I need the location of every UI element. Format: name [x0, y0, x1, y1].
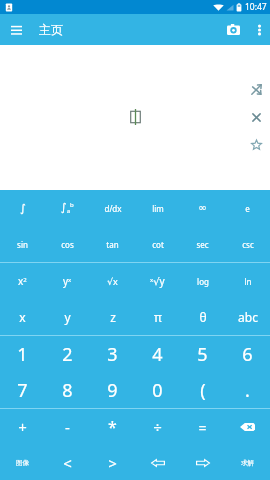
staticText: lim: [152, 203, 164, 214]
button[interactable]: 4: [135, 336, 180, 372]
button[interactable]: *: [90, 409, 135, 445]
button[interactable]: abc: [225, 299, 270, 335]
button[interactable]: 8: [45, 372, 90, 408]
staticText: 0: [152, 378, 163, 403]
staticText: x2: [18, 274, 27, 288]
staticText: sin: [17, 239, 28, 250]
button[interactable]: <: [45, 445, 90, 480]
staticText: x: [19, 309, 26, 325]
staticText: π: [154, 309, 162, 325]
button[interactable]: csc: [225, 226, 270, 262]
staticText: tan: [106, 239, 119, 250]
button[interactable]: (: [180, 372, 225, 408]
staticText: *: [108, 416, 117, 438]
staticText: 1: [17, 342, 28, 367]
button[interactable]: 6: [225, 336, 270, 372]
button[interactable]: lim: [135, 190, 180, 226]
button[interactable]: tan: [90, 226, 135, 262]
button[interactable]: cot: [135, 226, 180, 262]
button[interactable]: d/dx: [90, 190, 135, 226]
button[interactable]: e: [225, 190, 270, 226]
staticText: cot: [152, 239, 164, 250]
button[interactable]: 1: [0, 336, 45, 372]
staticText: 5: [197, 342, 208, 367]
button[interactable]: ÷: [135, 409, 180, 445]
button[interactable]: x2: [0, 263, 45, 299]
button[interactable]: Favorite: [247, 135, 265, 153]
button[interactable]: .: [225, 372, 270, 408]
staticText: <: [63, 453, 72, 473]
staticText: 6: [242, 342, 253, 367]
button[interactable]: Move left: [135, 445, 180, 480]
staticText: x√y: [150, 274, 165, 288]
button[interactable]: y: [45, 299, 90, 335]
button[interactable]: x√y: [135, 263, 180, 299]
staticText: 10:47: [245, 1, 267, 13]
staticText: d/dx: [104, 203, 122, 214]
button[interactable]: ∫ab: [45, 190, 90, 226]
staticText: sec: [196, 239, 209, 250]
staticText: 7: [17, 378, 28, 403]
button[interactable]: √x: [90, 263, 135, 299]
staticText: =: [198, 418, 207, 437]
button[interactable]: ∞: [180, 190, 225, 226]
staticText: z: [110, 309, 116, 325]
button[interactable]: ∫: [0, 190, 45, 226]
staticText: (: [200, 378, 206, 403]
button[interactable]: z: [90, 299, 135, 335]
button[interactable]: 9: [90, 372, 135, 408]
staticText: .: [245, 378, 250, 403]
staticText: log: [197, 276, 209, 287]
staticText: 4: [152, 342, 163, 367]
staticText: θ: [199, 309, 207, 325]
button[interactable]: log: [180, 263, 225, 299]
button[interactable]: More options: [248, 14, 270, 45]
staticText: >: [108, 453, 117, 473]
staticText: 图像: [16, 459, 29, 467]
button[interactable]: x: [0, 299, 45, 335]
button[interactable]: 求解: [225, 445, 270, 480]
staticText: ∫ab: [61, 201, 74, 215]
staticText: csc: [242, 239, 254, 250]
button[interactable]: θ: [180, 299, 225, 335]
button[interactable]: -: [45, 409, 90, 445]
staticText: abc: [238, 309, 258, 325]
staticText: e: [245, 203, 250, 214]
button[interactable]: +: [0, 409, 45, 445]
staticText: 3: [107, 342, 118, 367]
staticText: ∫: [20, 202, 26, 215]
button[interactable]: 3: [90, 336, 135, 372]
staticText: ln: [244, 276, 252, 287]
button[interactable]: 0: [135, 372, 180, 408]
staticText: yx: [63, 274, 72, 288]
button[interactable]: cos: [45, 226, 90, 262]
button[interactable]: yx: [45, 263, 90, 299]
button[interactable]: Camera: [219, 14, 248, 45]
button[interactable]: Navigation menu: [0, 14, 32, 45]
button[interactable]: Swap: [247, 80, 265, 98]
staticText: 主页: [39, 22, 63, 37]
staticText: 8: [62, 378, 73, 403]
staticText: ∞: [198, 202, 207, 214]
staticText: 2: [62, 342, 73, 367]
button[interactable]: Clear: [247, 108, 265, 126]
button[interactable]: Move right: [180, 445, 225, 480]
button[interactable]: 5: [180, 336, 225, 372]
staticText: +: [18, 417, 27, 437]
button[interactable]: =: [180, 409, 225, 445]
staticText: √x: [107, 275, 118, 287]
button[interactable]: 7: [0, 372, 45, 408]
button[interactable]: 图像: [0, 445, 45, 480]
staticText: 9: [107, 378, 118, 403]
staticText: 求解: [241, 459, 254, 467]
staticText: cos: [61, 239, 74, 250]
staticText: -: [65, 417, 70, 437]
button[interactable]: >: [90, 445, 135, 480]
button[interactable]: sec: [180, 226, 225, 262]
button[interactable]: 2: [45, 336, 90, 372]
button[interactable]: π: [135, 299, 180, 335]
staticText: ÷: [153, 417, 162, 437]
button[interactable]: sin: [0, 226, 45, 262]
button[interactable]: Backspace: [225, 409, 270, 445]
button[interactable]: ln: [225, 263, 270, 299]
